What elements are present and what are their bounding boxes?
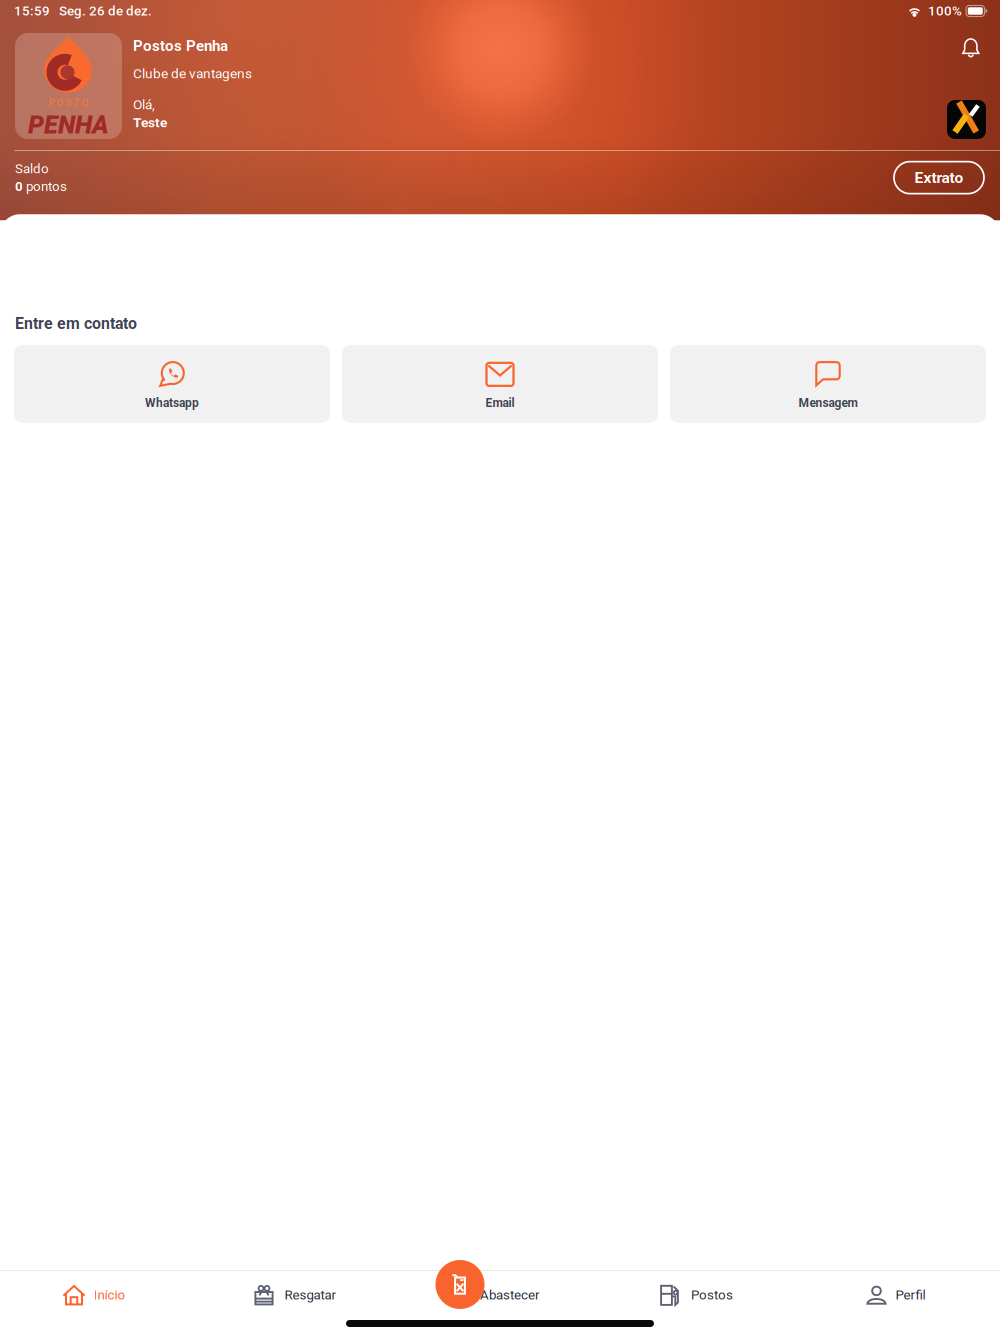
button[interactable]: Whatsapp bbox=[14, 345, 330, 423]
button[interactable]: Resgatar bbox=[199, 1271, 398, 1311]
staticText: Clube de vantagens bbox=[133, 66, 252, 82]
staticText: 15:59 bbox=[14, 3, 50, 19]
staticText: Teste bbox=[133, 115, 167, 131]
staticText: Abastecer bbox=[480, 1287, 540, 1303]
staticText: Entre em contato bbox=[15, 314, 137, 333]
staticText: Email bbox=[485, 396, 514, 410]
button[interactable]: Mensagem bbox=[670, 345, 986, 423]
button[interactable]: Início bbox=[0, 1271, 199, 1311]
staticText: Postos bbox=[691, 1287, 733, 1303]
button[interactable]: Aplicativo parceiro bbox=[947, 100, 986, 139]
staticText: P O S T O bbox=[48, 97, 88, 109]
staticText: PENHA bbox=[28, 110, 109, 140]
staticText: Perfil bbox=[895, 1287, 925, 1303]
button[interactable]: Notificações bbox=[954, 33, 986, 66]
button[interactable]: Abastecer bbox=[398, 1271, 597, 1311]
button[interactable]: Extrato bbox=[894, 162, 984, 194]
staticText: Saldo bbox=[15, 161, 49, 177]
staticText: Whatsapp bbox=[145, 396, 199, 410]
staticText: 100% bbox=[928, 3, 962, 19]
staticText: 0 bbox=[15, 179, 26, 194]
button[interactable]: Email bbox=[342, 345, 658, 423]
button[interactable]: Perfil bbox=[796, 1271, 995, 1311]
staticText: Seg. 26 de dez. bbox=[50, 3, 152, 19]
staticText: Resgatar bbox=[284, 1287, 336, 1303]
staticText: Mensagem bbox=[798, 396, 857, 410]
button[interactable]: Abastecer bbox=[435, 1260, 484, 1309]
button[interactable]: Postos bbox=[597, 1271, 796, 1311]
staticText: Extrato bbox=[914, 169, 963, 187]
staticText: Olá, bbox=[133, 97, 155, 113]
staticText: Postos Penha bbox=[133, 37, 228, 55]
staticText: pontos bbox=[26, 179, 67, 194]
staticText: Início bbox=[93, 1287, 125, 1303]
